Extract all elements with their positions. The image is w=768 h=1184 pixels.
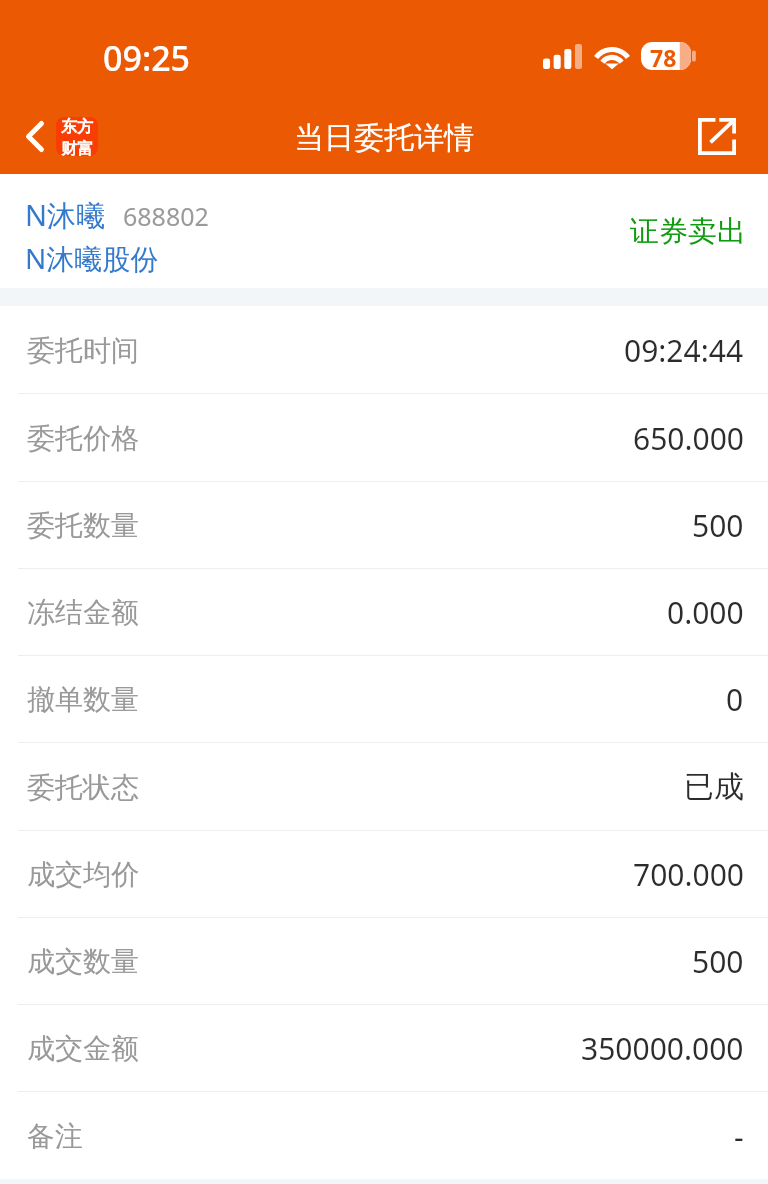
staticText: 0 [726, 679, 744, 720]
staticText: 0.000 [667, 592, 744, 633]
button[interactable]: Back [0, 109, 110, 162]
staticText: 冻结金额 [27, 595, 139, 630]
staticText: 成交均价 [27, 857, 139, 892]
button[interactable]: 成交金额 [0, 1005, 768, 1091]
staticText: 当日委托详情 [294, 119, 474, 157]
staticText: - [734, 1116, 744, 1157]
staticText: 500 [692, 505, 744, 546]
staticText: 备注 [27, 1119, 83, 1154]
staticText: 已成 [684, 768, 744, 806]
staticText: 撤单数量 [27, 682, 139, 717]
staticText: 350000.000 [581, 1028, 744, 1069]
button[interactable]: 备注 [0, 1092, 768, 1179]
button[interactable]: 委托状态 [0, 743, 768, 830]
button[interactable]: 成交数量 [0, 918, 768, 1004]
button[interactable]: Share [678, 104, 768, 167]
staticText: 东方 [61, 117, 93, 137]
staticText: 证券卖出 [630, 213, 746, 250]
button[interactable]: 委托时间 [0, 306, 768, 393]
staticText: 500 [692, 941, 744, 982]
button[interactable]: 委托价格 [0, 394, 768, 481]
staticText: 700.000 [633, 854, 744, 895]
staticText: 78 [650, 42, 677, 69]
staticText: N沐曦股份 [25, 239, 159, 277]
staticText: 财富 [61, 139, 93, 156]
button[interactable]: 冻结金额 [0, 569, 768, 655]
button[interactable]: N沐曦 [0, 174, 768, 288]
staticText: 委托时间 [27, 333, 139, 368]
button[interactable]: 撤单数量 [0, 656, 768, 742]
staticText: 09:24:44 [624, 330, 744, 371]
staticText: 成交金额 [27, 1031, 139, 1066]
staticText: 650.000 [633, 418, 744, 459]
staticText: 委托状态 [27, 770, 139, 805]
staticText: 688802 [123, 199, 209, 233]
staticText: 委托价格 [27, 421, 139, 456]
staticText: 成交数量 [27, 944, 139, 979]
button[interactable]: 成交均价 [0, 831, 768, 917]
staticText: 委托数量 [27, 508, 139, 543]
staticText: N沐曦 [25, 195, 106, 235]
staticText: 09:25 [103, 35, 191, 81]
button[interactable]: 委托数量 [0, 482, 768, 568]
